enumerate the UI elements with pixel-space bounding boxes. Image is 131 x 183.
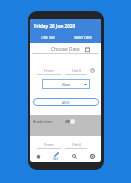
button[interactable]: From — [37, 66, 61, 75]
button[interactable]: Break time — [33, 116, 101, 126]
staticText: Choose Date — [51, 46, 80, 53]
staticText: Edit — [53, 157, 59, 161]
staticText: Friday 26 Jun 2020 — [34, 23, 76, 29]
staticText: Until — [72, 142, 81, 147]
button[interactable]: ADD — [33, 98, 99, 106]
staticText: From — [44, 142, 54, 147]
staticText: Until — [72, 68, 81, 73]
staticText: ONE DAY — [41, 36, 55, 40]
button[interactable]: Home — [30, 151, 47, 162]
button[interactable]: MANY DAYS — [65, 33, 101, 43]
button[interactable]: Settings — [83, 151, 101, 162]
staticText: Now — [62, 82, 71, 87]
button[interactable]: Until — [65, 66, 87, 75]
staticText: MANY DAYS — [74, 36, 92, 40]
button[interactable]: ONE DAY — [30, 33, 65, 43]
button[interactable]: Now — [42, 79, 90, 89]
staticText: Break time — [33, 119, 53, 124]
button[interactable]: Search — [65, 151, 83, 162]
button[interactable]: Until — [65, 140, 87, 149]
staticText: From — [44, 68, 54, 73]
staticText: ADD — [62, 100, 70, 105]
button[interactable]: Edit — [47, 151, 65, 162]
button[interactable]: From — [37, 140, 61, 149]
button[interactable]: Choose Date — [30, 44, 101, 54]
